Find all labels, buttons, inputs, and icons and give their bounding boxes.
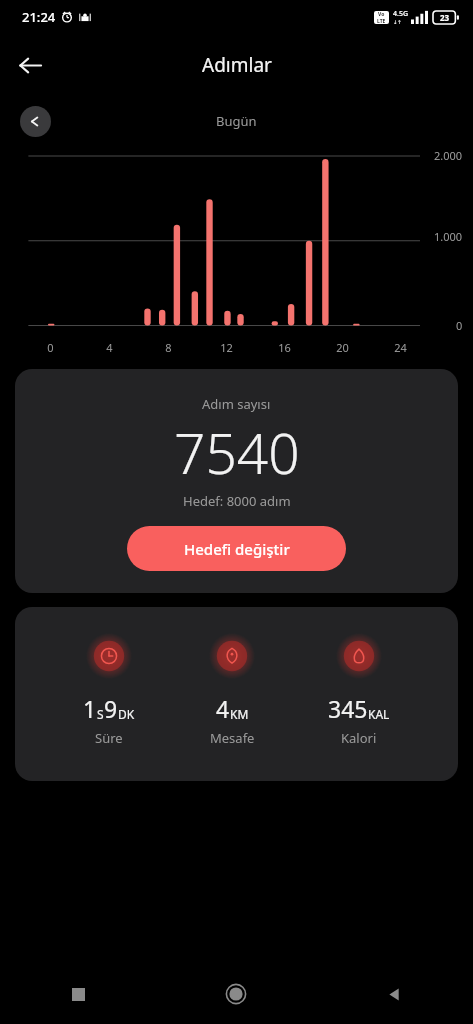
staticText: 0 — [47, 340, 54, 355]
staticText: Adımlar — [202, 52, 272, 78]
staticText: 0 — [456, 318, 463, 333]
staticText: 7540 — [174, 415, 300, 490]
button[interactable]: 1 — [77, 633, 141, 747]
staticText: 1.000 — [434, 229, 463, 244]
staticText: ↓↑ — [393, 19, 402, 25]
staticText: 8 — [165, 340, 172, 355]
button[interactable]: Recents — [0, 964, 157, 1024]
staticText: Mesafe — [210, 729, 255, 747]
staticText: 21:24 — [22, 8, 56, 26]
button[interactable]: 4 — [203, 633, 261, 747]
staticText: KM — [230, 706, 249, 722]
button[interactable]: Back — [315, 964, 473, 1024]
staticText: Kalori — [341, 729, 377, 747]
staticText: Hedef: 8000 adım — [183, 492, 291, 510]
button[interactable]: Previous day — [20, 106, 51, 137]
staticText: 16 — [278, 340, 291, 355]
staticText: 23 — [440, 12, 450, 23]
staticText: 12 — [220, 340, 233, 355]
staticText: 4.5G — [393, 9, 409, 19]
staticText: 2.000 — [434, 148, 463, 163]
staticText: S — [97, 706, 104, 722]
button[interactable]: Back — [8, 43, 52, 87]
button[interactable]: Home — [157, 964, 315, 1024]
staticText: Adım sayısı — [202, 395, 271, 413]
staticText: 9 — [104, 693, 118, 724]
staticText: LTE — [377, 18, 386, 24]
staticText: 24 — [394, 340, 407, 355]
button[interactable]: 345 — [322, 633, 396, 747]
staticText: 4 — [106, 340, 113, 355]
staticText: DK — [118, 706, 135, 722]
staticText: 4 — [216, 693, 230, 724]
button[interactable]: Hedefi değiştir — [127, 526, 346, 571]
staticText: Bugün — [216, 112, 257, 130]
staticText: Süre — [95, 729, 123, 747]
button[interactable]: Adım sayısı — [15, 369, 458, 593]
staticText: 345 — [328, 693, 368, 724]
staticText: Hedefi değiştir — [184, 539, 290, 559]
staticText: 20 — [336, 340, 349, 355]
staticText: KAL — [368, 706, 390, 722]
staticText: 1 — [83, 693, 97, 724]
staticText: Vo — [378, 11, 385, 18]
